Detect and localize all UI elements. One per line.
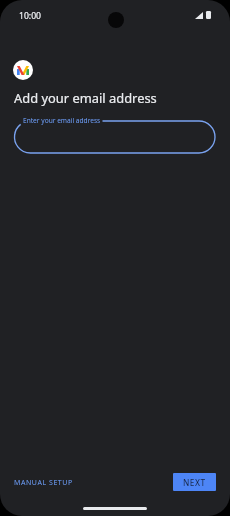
staticText: Add your email address (14, 89, 157, 107)
staticText: Enter your email address (23, 116, 101, 125)
button[interactable]: MANUAL SETUP (8, 474, 79, 492)
button[interactable]: Email address input field (15, 121, 216, 153)
button[interactable]: NEXT (173, 473, 216, 491)
staticText: MANUAL SETUP (14, 478, 73, 488)
staticText: 10:00 (19, 10, 41, 22)
staticText: NEXT (183, 477, 206, 488)
